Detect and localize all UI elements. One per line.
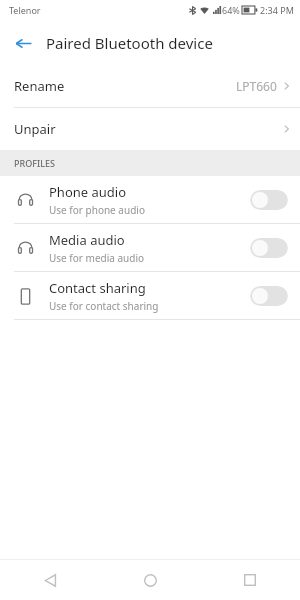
staticText: Use for media audio bbox=[49, 251, 145, 265]
staticText: Contact sharing bbox=[49, 279, 146, 297]
button[interactable]: Contact sharing bbox=[0, 272, 300, 319]
staticText: Paired Bluetooth device bbox=[46, 33, 213, 53]
staticText: Media audio bbox=[49, 231, 125, 249]
staticText: LPT660 bbox=[236, 78, 277, 94]
button[interactable]: Toggle bbox=[250, 238, 288, 258]
button[interactable]: Phone audio bbox=[0, 176, 300, 223]
staticText: Unpair bbox=[14, 120, 56, 138]
button[interactable]: Unpair bbox=[0, 108, 300, 150]
staticText: 64% bbox=[222, 4, 240, 16]
staticText: Phone audio bbox=[49, 183, 127, 201]
button[interactable]: Recents bbox=[200, 560, 300, 600]
button[interactable]: Toggle bbox=[250, 190, 288, 210]
staticText: Use for contact sharing bbox=[49, 299, 159, 313]
button[interactable]: Back bbox=[0, 560, 100, 600]
staticText: Use for phone audio bbox=[49, 203, 145, 217]
button[interactable]: Home bbox=[100, 560, 200, 600]
button[interactable]: Back bbox=[6, 26, 40, 60]
button[interactable]: Media audio bbox=[0, 224, 300, 271]
staticText: PROFILES bbox=[14, 157, 55, 169]
button[interactable]: Rename bbox=[0, 65, 300, 107]
button[interactable]: Toggle bbox=[250, 286, 288, 306]
staticText: Telenor bbox=[9, 4, 41, 16]
staticText: Rename bbox=[14, 77, 65, 95]
staticText: 2:34 PM bbox=[260, 4, 294, 16]
